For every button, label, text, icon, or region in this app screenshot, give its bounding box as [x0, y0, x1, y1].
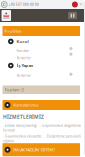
staticText: İş Yapan — [17, 63, 34, 68]
staticText: +90 537 000 00 00 — [9, 2, 39, 7]
staticText: Kriterler — [17, 55, 32, 60]
staticText: Profilim — [4, 28, 21, 34]
staticText: - Emlak danışmanlığı - Gayrimenkul değer… — [3, 123, 81, 132]
staticText: HİZMETLERİMİZ — [3, 113, 44, 120]
staticText: Sorular — [17, 48, 30, 53]
staticText: Kriterler — [17, 73, 32, 78]
button[interactable]: Menu — [68, 12, 77, 19]
staticText: > — [79, 1, 82, 8]
staticText: C — [3, 2, 6, 7]
button[interactable]: Home — [1, 10, 11, 21]
staticText: - Gayrimenkul ekspertiz - Değerleme pers… — [3, 134, 81, 143]
button[interactable]: Hizmetlerimiz — [0, 100, 84, 110]
staticText: Kurul — [17, 38, 29, 44]
button[interactable]: EMLAK YAZILIM SİSTEMİ — [0, 143, 84, 156]
staticText: Toplam: 2 — [4, 87, 23, 92]
staticText: EMLAK YAZILIM SİSTEMİ — [12, 147, 54, 152]
button[interactable]: İş Yapan — [0, 57, 84, 78]
staticText: Hizmetlerimiz — [12, 102, 38, 108]
button[interactable]: Kurul — [0, 36, 84, 57]
